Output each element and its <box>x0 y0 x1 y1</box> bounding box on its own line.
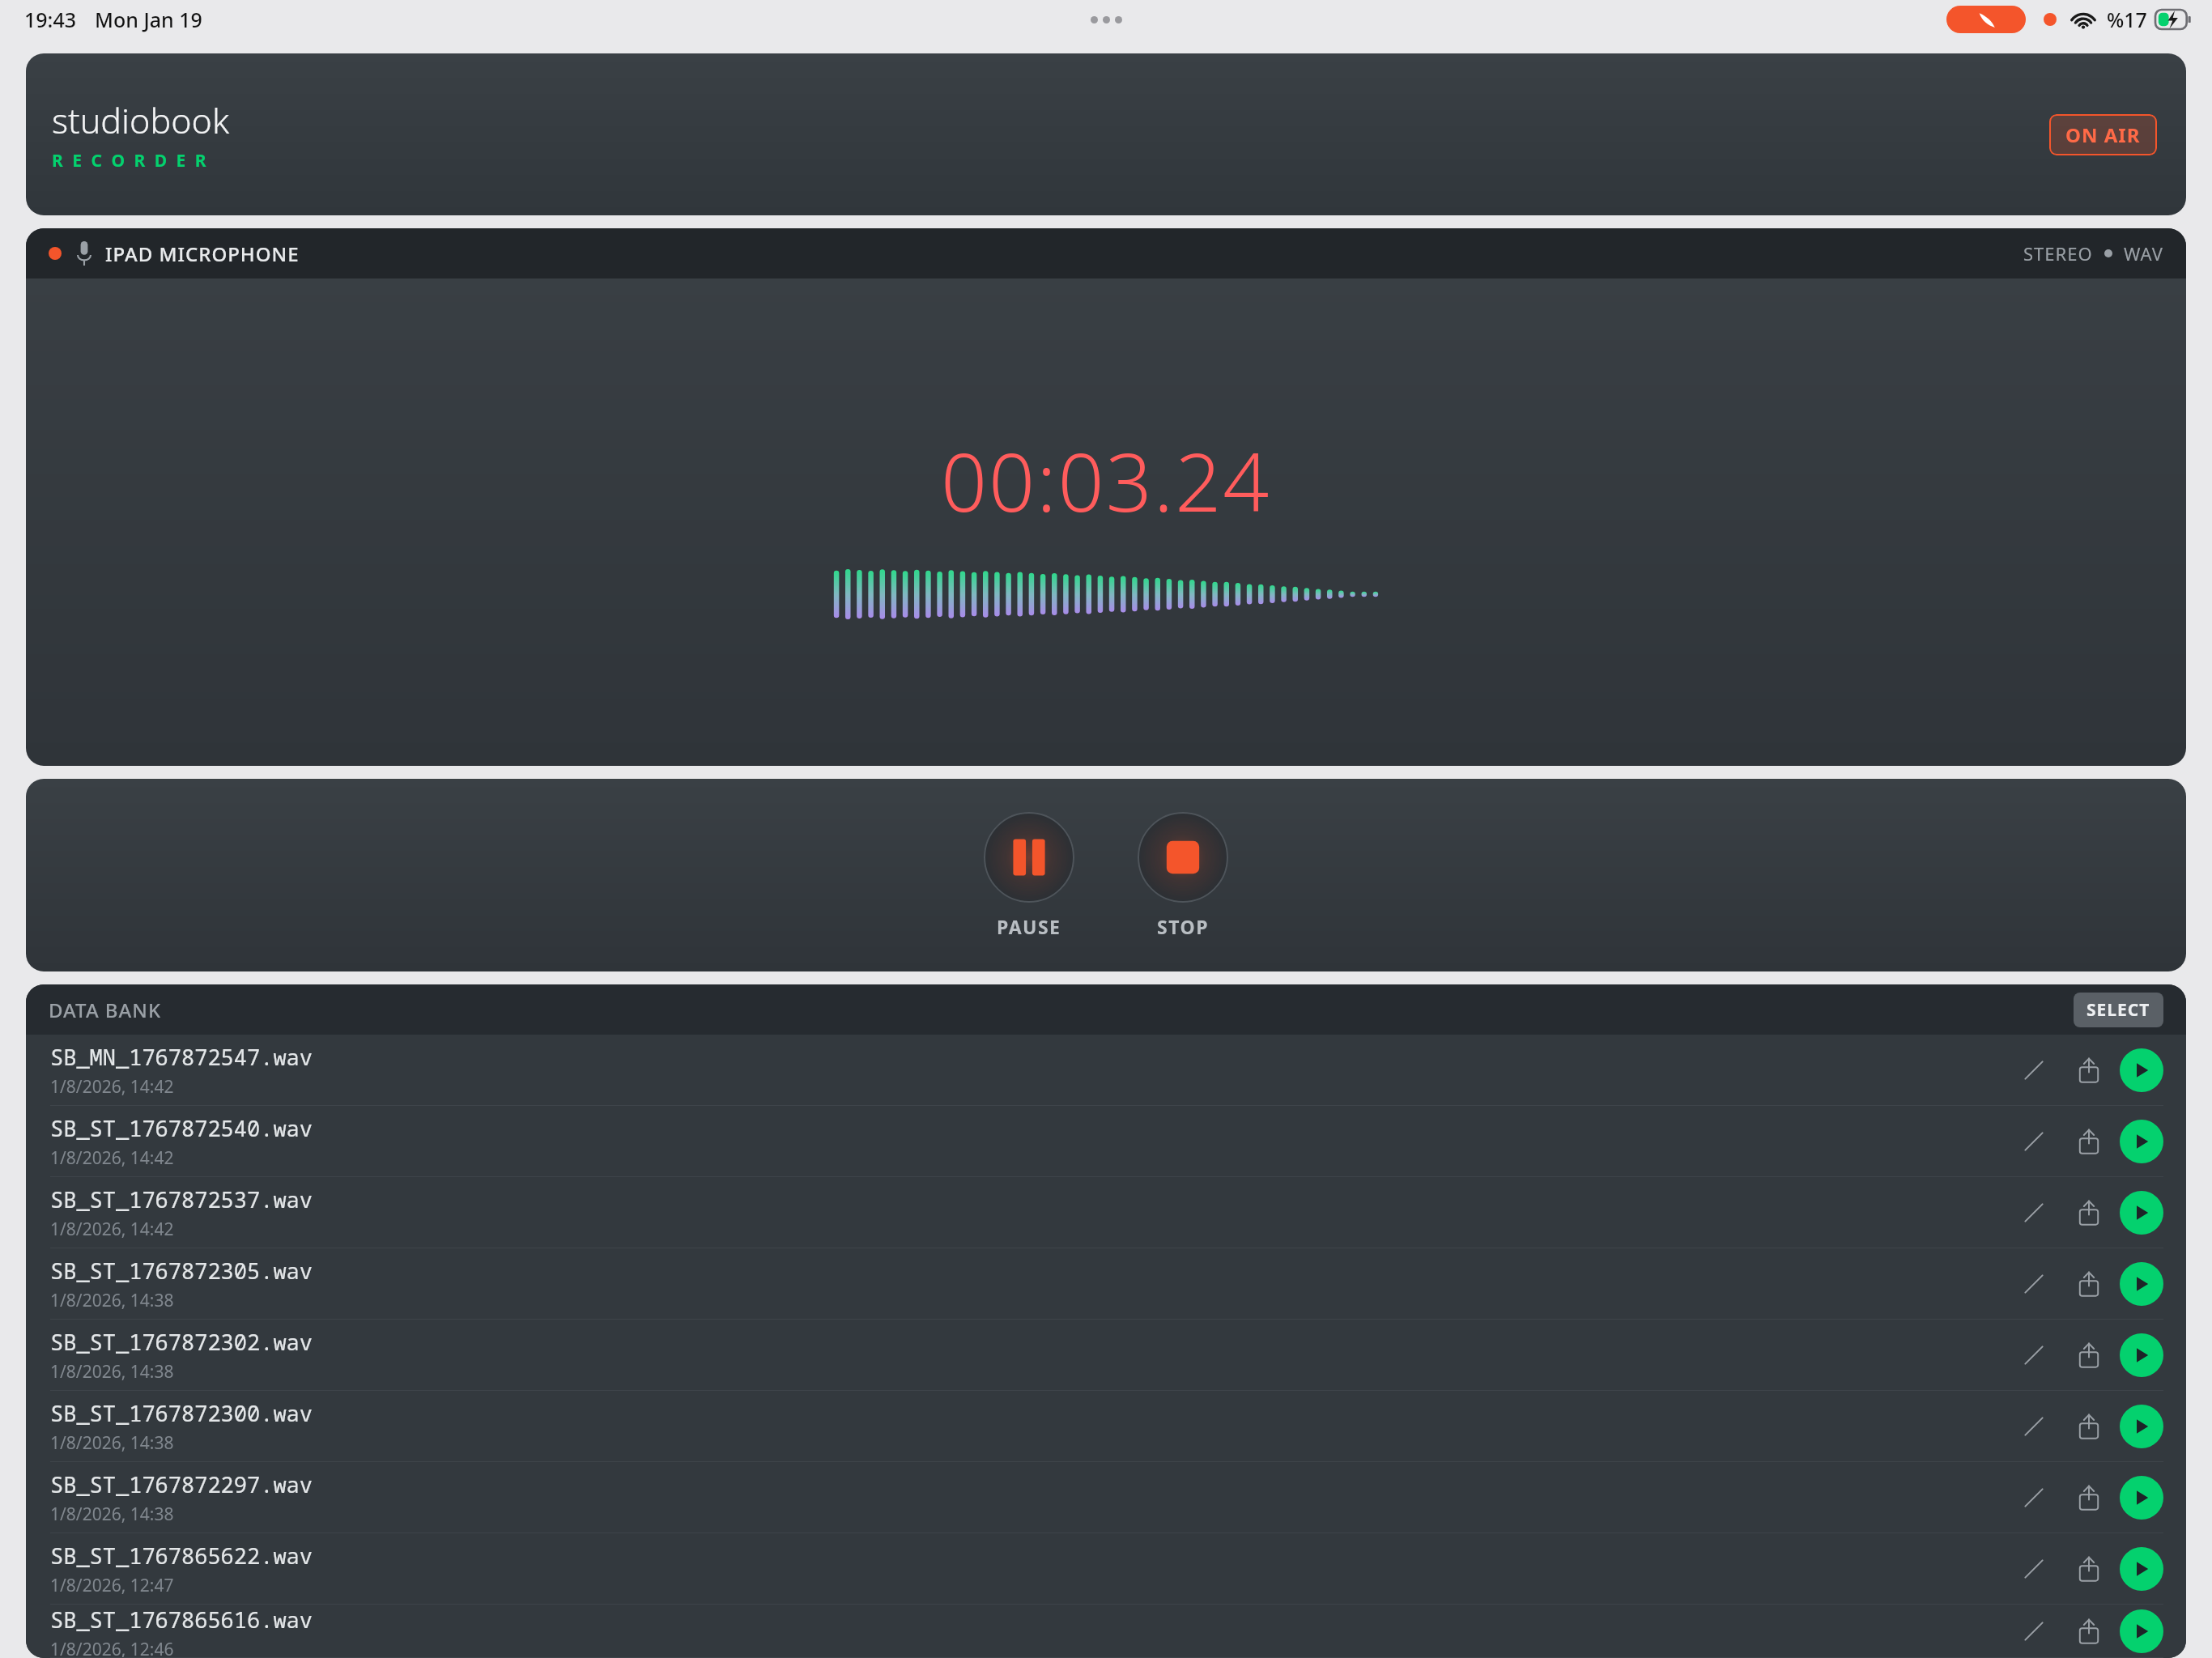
button[interactable]: SB_ST_1767865616.wav <box>26 1605 2186 1658</box>
button[interactable]: Rename <box>2011 1119 2057 1164</box>
button[interactable]: Play <box>2120 1048 2163 1092</box>
button[interactable]: Share <box>2066 1333 2112 1378</box>
button[interactable]: STOP <box>1134 809 1231 942</box>
button[interactable]: SB_MN_1767872547.wav <box>26 1035 2186 1106</box>
staticText: SELECT <box>2087 998 2150 1022</box>
staticText: 1/8/2026, 14:42 <box>50 1218 174 1241</box>
button[interactable]: Play <box>2120 1262 2163 1306</box>
button[interactable]: Rename <box>2011 1048 2057 1093</box>
button[interactable]: Play <box>2120 1609 2163 1653</box>
staticText: SB_ST_1767872537.wav <box>50 1184 313 1214</box>
button[interactable]: SB_ST_1767872305.wav <box>26 1248 2186 1320</box>
staticText: DATA BANK <box>49 997 162 1023</box>
button[interactable]: SB_ST_1767872302.wav <box>26 1320 2186 1391</box>
button[interactable]: SB_ST_1767872297.wav <box>26 1462 2186 1533</box>
button[interactable]: Share <box>2066 1261 2112 1307</box>
button[interactable]: Share <box>2066 1609 2112 1654</box>
button[interactable]: Share <box>2066 1190 2112 1235</box>
staticText: %17 <box>2107 6 2147 33</box>
button[interactable]: Play <box>2120 1191 2163 1235</box>
staticText: 1/8/2026, 14:38 <box>50 1289 174 1312</box>
button[interactable]: Rename <box>2011 1475 2057 1520</box>
button[interactable]: Rename <box>2011 1261 2057 1307</box>
button[interactable]: Share <box>2066 1546 2112 1592</box>
staticText: R E C O R D E R <box>52 149 209 172</box>
button[interactable]: Share <box>2066 1119 2112 1164</box>
button[interactable]: Share <box>2066 1475 2112 1520</box>
button[interactable]: SB_ST_1767872300.wav <box>26 1391 2186 1462</box>
staticText: 1/8/2026, 12:46 <box>50 1638 174 1658</box>
staticText: IPAD MICROPHONE <box>105 240 300 267</box>
staticText: 1/8/2026, 14:38 <box>50 1431 174 1455</box>
staticText: 1/8/2026, 14:38 <box>50 1360 174 1384</box>
staticText: STEREO <box>2023 241 2093 266</box>
staticText: SB_ST_1767872302.wav <box>50 1327 313 1357</box>
staticText: SB_ST_1767865616.wav <box>50 1605 313 1635</box>
staticText: PAUSE <box>997 914 1061 939</box>
staticText: SB_MN_1767872547.wav <box>50 1042 313 1072</box>
button[interactable]: SELECT <box>2074 993 2163 1027</box>
button[interactable]: Rename <box>2011 1404 2057 1449</box>
button[interactable]: ON AIR <box>2049 114 2157 155</box>
staticText: 19:43 <box>24 6 77 33</box>
button[interactable]: SB_ST_1767872540.wav <box>26 1106 2186 1177</box>
button[interactable]: Play <box>2120 1547 2163 1591</box>
staticText: SB_ST_1767872540.wav <box>50 1113 313 1143</box>
button[interactable]: Play <box>2120 1476 2163 1520</box>
staticText: STOP <box>1157 914 1209 939</box>
staticText: studiobook <box>52 96 230 144</box>
button[interactable]: Rename <box>2011 1190 2057 1235</box>
button[interactable]: Rename <box>2011 1546 2057 1592</box>
button[interactable]: Play <box>2120 1333 2163 1377</box>
button[interactable]: PAUSE <box>981 809 1078 942</box>
staticText: WAV <box>2124 241 2163 266</box>
staticText: Mon Jan 19 <box>95 6 202 33</box>
staticText: SB_ST_1767872300.wav <box>50 1398 313 1428</box>
staticText: SB_ST_1767872297.wav <box>50 1469 313 1499</box>
button[interactable]: Share <box>2066 1048 2112 1093</box>
staticText: SB_ST_1767872305.wav <box>50 1256 313 1286</box>
button[interactable]: Play <box>2120 1120 2163 1163</box>
staticText: 1/8/2026, 12:47 <box>50 1574 174 1597</box>
button[interactable]: Share <box>2066 1404 2112 1449</box>
button[interactable]: SB_ST_1767872537.wav <box>26 1177 2186 1248</box>
button[interactable]: Rename <box>2011 1609 2057 1654</box>
staticText: 1/8/2026, 14:42 <box>50 1075 174 1099</box>
staticText: SB_ST_1767865622.wav <box>50 1541 313 1571</box>
staticText: 1/8/2026, 14:42 <box>50 1146 174 1170</box>
button[interactable]: Play <box>2120 1405 2163 1448</box>
staticText: 00:03.24 <box>941 425 1271 535</box>
button[interactable]: SB_ST_1767865622.wav <box>26 1533 2186 1605</box>
staticText: ON AIR <box>2065 121 2141 148</box>
staticText: 1/8/2026, 14:38 <box>50 1503 174 1526</box>
button[interactable]: Rename <box>2011 1333 2057 1378</box>
